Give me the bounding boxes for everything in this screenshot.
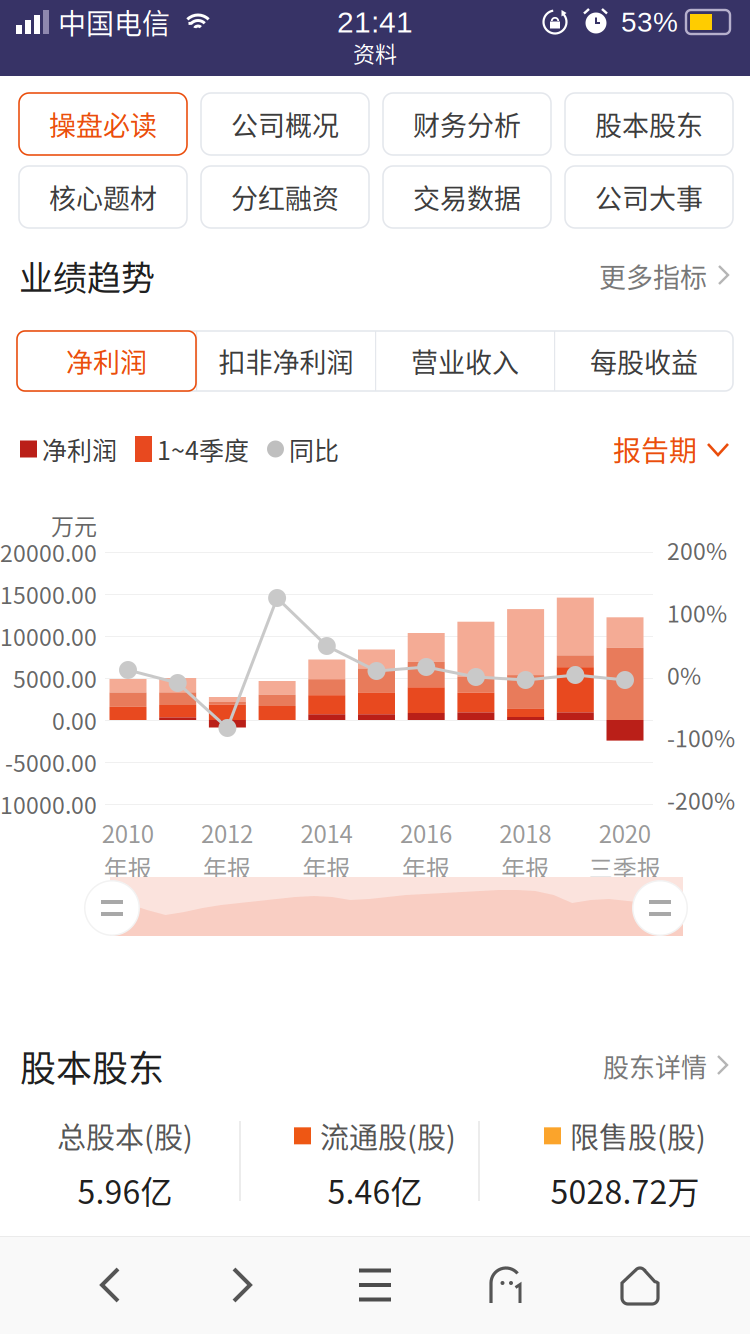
staticText: 2016 bbox=[400, 815, 452, 850]
staticText: 中国电信 bbox=[58, 2, 170, 42]
staticText: 5028.72万 bbox=[550, 1167, 699, 1213]
button[interactable]: 核心题材 bbox=[19, 166, 187, 228]
staticText: 交易数据 bbox=[413, 177, 521, 217]
staticText: 营业收入 bbox=[411, 341, 519, 381]
button[interactable]: Back bbox=[43, 1236, 176, 1334]
staticText: 每股收益 bbox=[590, 341, 698, 381]
staticText: 核心题材 bbox=[49, 177, 157, 217]
button[interactable]: 每股收益 bbox=[554, 331, 733, 391]
button[interactable]: Menu bbox=[308, 1236, 441, 1334]
staticText: 1~4季度 bbox=[157, 431, 249, 467]
staticText: 2018 bbox=[499, 815, 551, 850]
staticText: 股本股东 bbox=[595, 104, 703, 144]
staticText: 53% bbox=[621, 6, 678, 38]
staticText: -200% bbox=[667, 783, 735, 816]
staticText: 2012 bbox=[201, 815, 253, 850]
button[interactable]: Forward bbox=[175, 1236, 308, 1334]
staticText: -5000.00 bbox=[5, 745, 97, 779]
button[interactable]: 分红融资 bbox=[201, 166, 369, 228]
staticText: 年报 bbox=[302, 850, 350, 885]
staticText: 总股本(股) bbox=[57, 1115, 193, 1157]
button[interactable]: 财务分析 bbox=[383, 93, 551, 155]
staticText: 年报 bbox=[203, 850, 251, 885]
button[interactable]: 报告期 bbox=[613, 429, 730, 469]
staticText: 更多指标 bbox=[599, 256, 707, 296]
staticText: 扣非净利润 bbox=[219, 341, 354, 381]
staticText: 200% bbox=[667, 533, 727, 567]
staticText: 三季报 bbox=[589, 850, 661, 885]
staticText: 20000.00 bbox=[0, 535, 97, 569]
staticText: 同比 bbox=[289, 431, 339, 467]
staticText: 0.00 bbox=[52, 703, 97, 737]
staticText: 公司大事 bbox=[595, 177, 703, 217]
staticText: 净利润 bbox=[42, 431, 117, 467]
staticText: 5000.00 bbox=[13, 661, 97, 695]
staticText: 2020 bbox=[599, 815, 651, 850]
staticText: 操盘必读 bbox=[49, 104, 157, 144]
staticText: 年报 bbox=[402, 850, 450, 885]
staticText: 2010 bbox=[102, 815, 154, 850]
staticText: 5.96亿 bbox=[77, 1167, 172, 1213]
staticText: 10000.00 bbox=[0, 619, 97, 653]
button[interactable]: 营业收入 bbox=[375, 331, 554, 391]
staticText: 流通股(股) bbox=[320, 1115, 456, 1157]
staticText: 股东详情 bbox=[603, 1047, 707, 1085]
staticText: -100% bbox=[667, 720, 735, 754]
button[interactable]: Profile bbox=[441, 1236, 574, 1334]
staticText: 分红融资 bbox=[231, 177, 339, 217]
staticText: 年报 bbox=[501, 850, 549, 885]
button[interactable]: 公司概况 bbox=[201, 93, 369, 155]
staticText: 资料 bbox=[353, 37, 397, 69]
staticText: -10000.00 bbox=[0, 787, 97, 821]
staticText: 21:41 bbox=[337, 5, 413, 39]
button[interactable]: 操盘必读 bbox=[19, 93, 187, 155]
button[interactable]: 更多指标 bbox=[599, 256, 731, 296]
staticText: 净利润 bbox=[66, 341, 147, 381]
button[interactable]: 股本股东 bbox=[565, 93, 733, 155]
button[interactable]: 交易数据 bbox=[383, 166, 551, 228]
staticText: 万元 bbox=[51, 508, 97, 542]
staticText: 业绩趋势 bbox=[19, 251, 155, 301]
staticText: 0% bbox=[667, 658, 701, 691]
button[interactable]: 扣非净利润 bbox=[196, 331, 375, 391]
staticText: 5.46亿 bbox=[327, 1167, 422, 1213]
staticText: 股本股东 bbox=[20, 1040, 164, 1092]
staticText: 100% bbox=[667, 596, 727, 629]
button[interactable]: 净利润 bbox=[17, 331, 196, 391]
button[interactable]: 公司大事 bbox=[565, 166, 733, 228]
staticText: 限售股(股) bbox=[570, 1115, 706, 1157]
button[interactable]: 股东详情 bbox=[603, 1047, 730, 1085]
button[interactable]: Home bbox=[573, 1236, 706, 1334]
staticText: 财务分析 bbox=[413, 104, 521, 144]
staticText: 报告期 bbox=[613, 429, 697, 469]
staticText: 2014 bbox=[300, 815, 352, 850]
staticText: 公司概况 bbox=[231, 104, 339, 144]
staticText: 15000.00 bbox=[0, 577, 97, 611]
staticText: 年报 bbox=[104, 850, 152, 885]
